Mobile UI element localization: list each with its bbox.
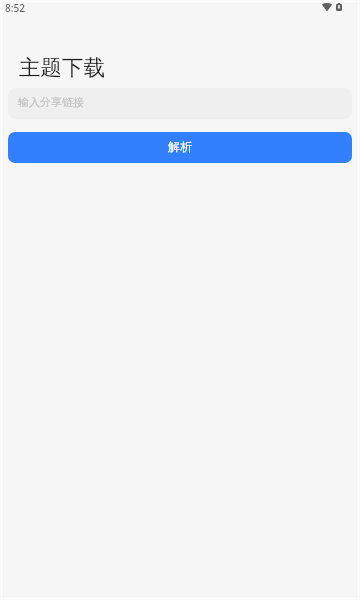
staticText: 主题下载 [19,54,105,81]
staticText: 解析 [168,139,192,154]
other: Wi-Fi signal [322,3,332,11]
button[interactable]: 解析 [8,132,352,163]
button[interactable]: 输入分享链接 [8,88,352,119]
staticText: 输入分享链接 [18,95,84,109]
other: Battery [336,3,342,11]
staticText: 8:52 [5,1,25,15]
